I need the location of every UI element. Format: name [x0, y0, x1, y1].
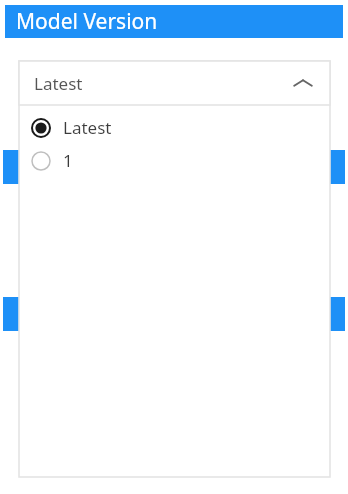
staticText: Latest: [63, 116, 112, 139]
button[interactable]: Model Version: [5, 5, 343, 38]
button[interactable]: Latest: [19, 61, 330, 105]
other: Collapse: [290, 70, 316, 96]
staticText: Model Version: [16, 7, 158, 36]
staticText: Latest: [34, 72, 83, 95]
button[interactable]: Add Another Model: [3, 297, 345, 331]
button[interactable]: 1: [19, 144, 330, 177]
staticText: 1: [63, 149, 73, 172]
button[interactable]: Latest: [19, 111, 330, 144]
button[interactable]: 9% Predict Again: [3, 150, 345, 184]
